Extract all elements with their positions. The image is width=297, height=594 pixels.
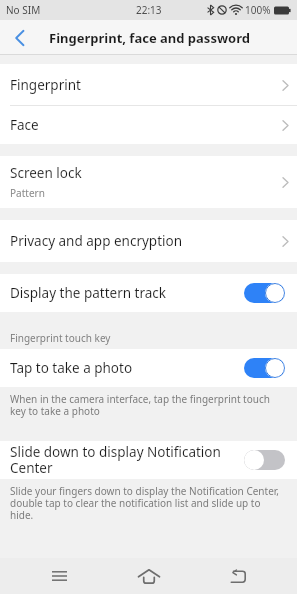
staticText: Pattern [10, 186, 45, 200]
staticText: Privacy and app encryption [10, 232, 183, 250]
staticText: Fingerprint touch key [10, 331, 111, 345]
staticText: 100% [245, 3, 271, 17]
staticText: No SIM [6, 3, 41, 17]
button[interactable] [244, 358, 285, 378]
button[interactable]: Fingerprint [0, 64, 297, 106]
button[interactable] [104, 558, 193, 594]
staticText: 22:13 [136, 3, 162, 17]
button[interactable]: Screen lock [0, 156, 297, 208]
button[interactable] [15, 558, 104, 594]
button[interactable]: Slide down to display Notification Cente… [0, 441, 297, 479]
staticText: Fingerprint [10, 76, 81, 94]
staticText: Slide down to display Notification Cente… [10, 443, 221, 477]
button[interactable]: Privacy and app encryption [0, 220, 297, 262]
button[interactable]: Display the pattern track [0, 274, 297, 312]
button[interactable] [244, 283, 285, 303]
button[interactable]: Tap to take a photo [0, 349, 297, 387]
staticText: Screen lock [10, 164, 82, 182]
button[interactable] [244, 450, 285, 470]
staticText: Display the pattern track [10, 284, 167, 302]
staticText: Tap to take a photo [10, 359, 133, 377]
button[interactable]: Face [0, 106, 297, 144]
staticText: Face [10, 116, 39, 134]
button[interactable] [193, 558, 282, 594]
staticText: When in the camera interface, tap the fi… [10, 392, 289, 418]
staticText: Fingerprint, face and password [49, 29, 250, 47]
button[interactable] [0, 20, 40, 55]
staticText: Slide your fingers down to display the N… [10, 484, 289, 522]
